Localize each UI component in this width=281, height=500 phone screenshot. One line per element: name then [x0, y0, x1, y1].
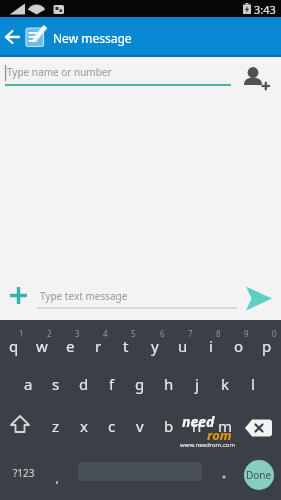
staticText: 3:43	[254, 2, 276, 17]
staticText: d	[79, 374, 89, 394]
button[interactable]: c	[98, 413, 126, 439]
button[interactable]: ?123	[2, 458, 46, 488]
staticText: 2	[47, 328, 52, 337]
staticText: b	[164, 416, 174, 436]
staticText: 1	[19, 328, 24, 337]
button[interactable]: w	[28, 333, 56, 359]
button[interactable]: o	[225, 333, 253, 359]
staticText: h	[164, 374, 174, 394]
staticText: s	[52, 374, 60, 394]
staticText: New message	[53, 30, 132, 46]
staticText: e	[66, 336, 75, 356]
button[interactable]: Type text message	[36, 281, 238, 311]
staticText: Done	[246, 468, 272, 482]
staticText: 3	[75, 328, 80, 337]
staticText: a	[24, 374, 33, 394]
staticText: k	[221, 374, 230, 394]
staticText: 9	[244, 328, 249, 337]
staticText: 8	[216, 328, 221, 337]
staticText: v	[136, 416, 144, 436]
button[interactable]: d	[70, 371, 98, 397]
staticText: n	[192, 416, 202, 436]
staticText: 6	[160, 328, 165, 337]
staticText: g	[135, 374, 145, 394]
button[interactable]: ,	[46, 470, 68, 488]
button[interactable]	[0, 23, 24, 51]
button[interactable]: y	[141, 333, 169, 359]
staticText: 5	[131, 328, 136, 337]
button[interactable]: k	[211, 371, 239, 397]
staticText: w	[36, 336, 48, 356]
button[interactable]: g	[126, 371, 154, 397]
staticText: j	[195, 374, 199, 394]
button[interactable]: j	[183, 371, 211, 397]
button[interactable]: Type name or number	[0, 56, 281, 96]
button[interactable]: f	[98, 371, 126, 397]
button[interactable]: u	[169, 333, 197, 359]
button[interactable]: b	[155, 413, 183, 439]
staticText: q	[9, 336, 19, 356]
staticText: z	[52, 416, 60, 436]
button[interactable]: s	[42, 371, 70, 397]
staticText: Type text message	[40, 289, 128, 303]
staticText: f	[109, 374, 115, 394]
button[interactable]: v	[126, 413, 154, 439]
button[interactable]: n	[183, 413, 211, 439]
button[interactable]	[242, 283, 276, 313]
staticText: c	[108, 416, 116, 436]
staticText: rom	[207, 426, 232, 444]
staticText: 7	[188, 328, 193, 337]
button[interactable]: p	[253, 333, 281, 359]
staticText: o	[234, 336, 244, 356]
button[interactable]	[240, 60, 272, 92]
button[interactable]: h	[155, 371, 183, 397]
button[interactable]: Done	[244, 460, 274, 490]
button[interactable]: r	[84, 333, 112, 359]
staticText: ,	[56, 472, 59, 486]
button[interactable]	[25, 25, 47, 49]
button[interactable]: q	[0, 333, 28, 359]
button[interactable]: l	[239, 371, 267, 397]
staticText: u	[178, 336, 188, 356]
button[interactable]	[4, 281, 33, 310]
staticText: t	[123, 336, 129, 356]
button[interactable]	[0, 413, 42, 439]
staticText: 0	[272, 328, 277, 337]
staticText: y	[151, 336, 159, 356]
button[interactable]: a	[14, 371, 42, 397]
staticText: ?123	[13, 466, 35, 480]
staticText: Type name or number	[7, 65, 112, 79]
button[interactable]: t	[112, 333, 140, 359]
staticText: x	[80, 416, 88, 436]
staticText: r	[95, 336, 102, 356]
staticText: p	[262, 336, 272, 356]
button[interactable]	[239, 416, 281, 442]
staticText: l	[251, 374, 255, 394]
staticText: www.needrom.com	[180, 441, 236, 449]
button[interactable]: z	[42, 413, 70, 439]
button[interactable]: e	[56, 333, 84, 359]
button[interactable]: m	[211, 413, 239, 439]
button[interactable]: i	[197, 333, 225, 359]
staticText: 4	[103, 328, 108, 337]
staticText: need	[182, 412, 215, 431]
staticText: i	[209, 336, 213, 356]
button[interactable]: x	[70, 413, 98, 439]
staticText: m	[218, 416, 233, 436]
